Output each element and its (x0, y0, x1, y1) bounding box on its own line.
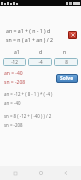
staticText: sn = -208 (4, 79, 26, 86)
staticText: d (39, 49, 43, 56)
staticText: sn = n ( a1 + an ) / 2 (6, 36, 53, 43)
button[interactable]: Solve (56, 74, 78, 83)
button[interactable]: 8 (54, 58, 78, 66)
staticText: sn = 8 ( -12 + ( -40 ) ) / 2 (4, 113, 52, 119)
button[interactable]: Home (36, 168, 46, 178)
button[interactable]: Clear (68, 31, 77, 39)
staticText: an = -12 + ( 8 - 1 ) * ( -4 ) (4, 91, 53, 97)
button[interactable]: Back (61, 168, 71, 178)
staticText: -12 (11, 59, 18, 65)
staticText: an = -40 (4, 100, 21, 106)
button[interactable]: -12 (3, 58, 26, 66)
staticText: an = -40 (4, 70, 23, 77)
staticText: an = a1 + ( n - 1 ) d (6, 27, 51, 34)
staticText: -4 (38, 59, 43, 65)
staticText: 8 (65, 59, 68, 65)
button[interactable]: Recent apps (10, 168, 20, 178)
staticText: n (63, 49, 67, 56)
staticText: Solve (60, 75, 74, 82)
button[interactable]: -4 (28, 58, 52, 66)
staticText: sn = -208 (4, 122, 23, 128)
staticText: a1 (14, 49, 20, 56)
